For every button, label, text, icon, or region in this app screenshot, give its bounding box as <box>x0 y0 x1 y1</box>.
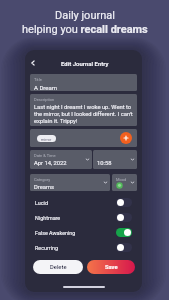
button[interactable]: Nightmare <box>35 210 132 225</box>
staticText: helping you recall dreams <box>22 23 148 36</box>
staticText: Apr 14, 2022 <box>34 160 67 167</box>
button[interactable]: Date & Time <box>30 150 92 169</box>
staticText: Title <box>34 77 42 82</box>
button[interactable]: Back <box>25 55 41 71</box>
staticText: Daily journal <box>55 9 115 22</box>
staticText: Edit Journal Entry <box>61 60 109 67</box>
staticText: Recurring <box>35 245 58 251</box>
button[interactable]: Save <box>87 260 135 274</box>
button[interactable]: Delete <box>33 260 83 274</box>
button[interactable]: Title <box>30 74 137 91</box>
staticText: 10:58 <box>97 160 112 167</box>
button[interactable]: Description <box>30 94 137 126</box>
button[interactable]: Add tag <box>120 132 132 144</box>
button[interactable]: 10:58 <box>93 150 137 169</box>
button[interactable]: False Awakening <box>35 225 132 240</box>
button[interactable]: Lucid <box>35 195 132 210</box>
staticText: Description <box>34 97 55 102</box>
button[interactable]: Mood <box>112 174 137 191</box>
staticText: Date & Time <box>34 153 56 158</box>
staticText: False Awakening <box>35 230 76 236</box>
button[interactable]: Category <box>30 174 110 191</box>
staticText: Nightmare <box>35 215 61 221</box>
staticText: A Dream <box>34 84 58 91</box>
staticText: mirror <box>41 137 52 141</box>
button[interactable]: Recurring <box>35 240 132 255</box>
button[interactable]: mirror <box>37 135 56 142</box>
staticText: Delete <box>50 264 67 271</box>
staticText: Lucid <box>35 200 48 206</box>
staticText: Category <box>34 177 51 182</box>
staticText: Save <box>105 264 118 271</box>
staticText: Dreams <box>34 184 55 191</box>
staticText: Last night I dreamt I woke up. Went to t… <box>34 104 133 125</box>
staticText: Mood <box>116 177 127 182</box>
